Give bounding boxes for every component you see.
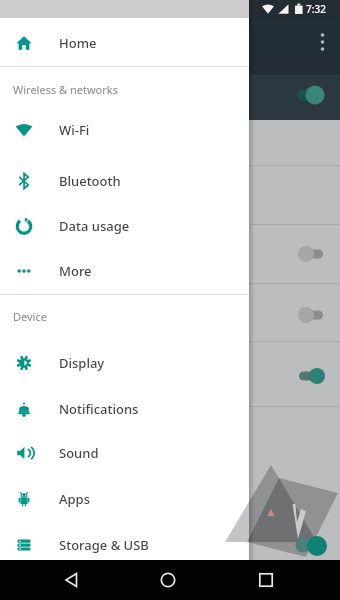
staticText: Display: [59, 354, 105, 372]
button[interactable]: Notifications: [0, 386, 249, 431]
staticText: Bluetooth: [59, 172, 121, 190]
staticText: Apps: [59, 490, 90, 508]
staticText: Device: [13, 309, 47, 324]
button[interactable]: Display: [0, 340, 249, 385]
button[interactable]: Bluetooth: [0, 158, 249, 203]
button[interactable]: [148, 560, 188, 600]
button[interactable]: Home: [0, 20, 249, 65]
staticText: Wi-Fi: [59, 121, 90, 139]
button[interactable]: Sound: [0, 430, 249, 475]
button[interactable]: [52, 560, 92, 600]
button[interactable]: Storage & USB: [0, 522, 249, 567]
staticText: Wireless & networks: [13, 82, 118, 97]
staticText: Storage & USB: [59, 536, 149, 554]
staticText: More: [59, 262, 92, 280]
button[interactable]: More: [0, 248, 249, 293]
staticText: Notifications: [59, 400, 139, 418]
button[interactable]: Data usage: [0, 203, 249, 248]
staticText: Data usage: [59, 217, 130, 235]
staticText: Sound: [59, 444, 99, 462]
staticText: Home: [59, 34, 97, 52]
staticText: 7:32: [306, 2, 326, 16]
button[interactable]: [246, 560, 286, 600]
button[interactable]: Apps: [0, 476, 249, 521]
button[interactable]: Wi-Fi: [0, 107, 249, 152]
